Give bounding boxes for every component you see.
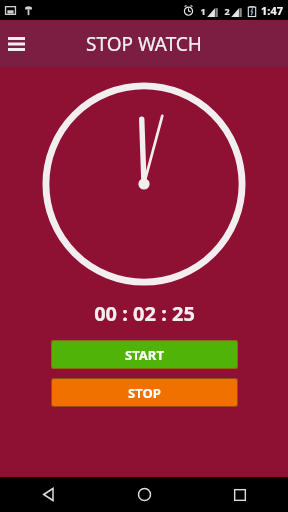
staticText: 00 : 02 : 25: [94, 300, 195, 327]
staticText: 1:47: [261, 3, 283, 18]
button[interactable]: Back: [0, 477, 96, 512]
button[interactable]: Recent apps: [192, 477, 288, 512]
staticText: 2: [224, 5, 230, 17]
staticText: START: [125, 346, 164, 364]
button[interactable]: Home: [96, 477, 192, 512]
staticText: STOP: [128, 384, 161, 402]
button[interactable]: Open navigation menu: [2, 30, 30, 58]
button[interactable]: START: [52, 341, 237, 368]
staticText: 1: [200, 5, 206, 17]
staticText: STOP WATCH: [86, 31, 202, 57]
button[interactable]: STOP: [52, 379, 237, 406]
